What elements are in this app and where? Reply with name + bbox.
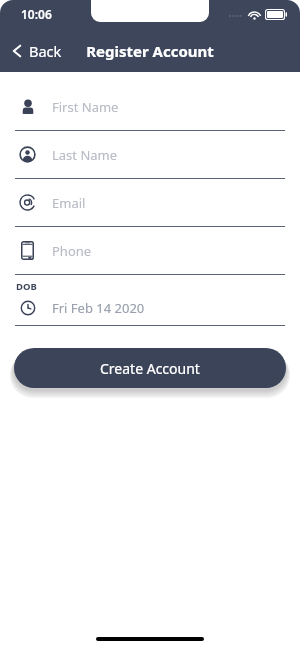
staticText: Register Account bbox=[86, 41, 214, 61]
staticText: 10:06 bbox=[21, 6, 52, 22]
staticText: Last Name bbox=[52, 146, 118, 164]
button[interactable]: Create Account bbox=[14, 348, 286, 388]
staticText: Back bbox=[29, 41, 62, 61]
staticText: Create Account bbox=[100, 359, 200, 378]
staticText: Email bbox=[52, 194, 86, 212]
button[interactable]: Back bbox=[0, 37, 70, 65]
staticText: Phone bbox=[52, 242, 92, 260]
button[interactable]: DOB bbox=[15, 275, 285, 326]
staticText: Fri Feb 14 2020 bbox=[52, 299, 145, 317]
button[interactable]: Last Name bbox=[15, 131, 285, 179]
button[interactable]: First Name bbox=[15, 83, 285, 131]
staticText: DOB bbox=[16, 280, 37, 293]
staticText: First Name bbox=[52, 98, 119, 116]
button[interactable]: Phone bbox=[15, 227, 285, 275]
button[interactable]: Email bbox=[15, 179, 285, 227]
